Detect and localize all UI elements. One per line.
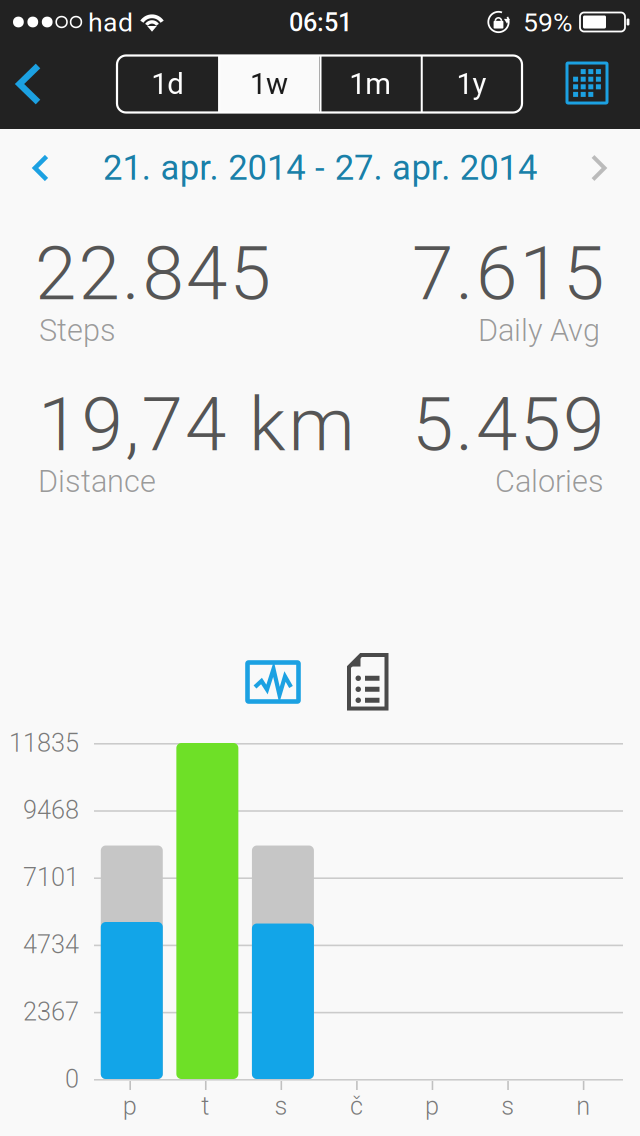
- staticText: Steps: [39, 312, 116, 348]
- staticText: Distance: [38, 463, 156, 499]
- staticText: 4734: [23, 930, 79, 959]
- staticText: 0: [65, 1064, 79, 1094]
- staticText: Calories: [495, 463, 604, 499]
- button[interactable]: 1w: [218, 55, 319, 112]
- staticText: t: [201, 1091, 209, 1121]
- staticText: 5.459: [412, 381, 604, 468]
- staticText: 7101: [23, 863, 79, 892]
- staticText: n: [576, 1091, 590, 1121]
- button[interactable]: 1d: [117, 42, 522, 126]
- button[interactable]: Calendar: [551, 41, 623, 125]
- staticText: 21. apr. 2014 - 27. apr. 2014: [103, 148, 537, 188]
- staticText: p: [123, 1091, 137, 1121]
- staticText: 1d: [151, 67, 184, 101]
- button[interactable]: 1d: [117, 55, 218, 112]
- staticText: č: [350, 1091, 363, 1121]
- button[interactable]: 1y: [421, 55, 522, 112]
- staticText: 1m: [349, 67, 391, 101]
- staticText: s: [274, 1091, 287, 1121]
- button[interactable]: Next week: [561, 137, 637, 199]
- staticText: had: [88, 7, 133, 38]
- staticText: p: [425, 1091, 439, 1121]
- staticText: 1y: [456, 67, 486, 101]
- staticText: 7.615: [412, 230, 604, 317]
- staticText: 06:51: [289, 8, 352, 37]
- staticText: 2367: [23, 997, 79, 1027]
- staticText: 19,74 km: [38, 381, 354, 468]
- staticText: Daily Avg: [478, 312, 600, 348]
- staticText: 22.845: [35, 230, 270, 317]
- button[interactable]: 1m: [319, 55, 421, 112]
- staticText: s: [501, 1091, 514, 1121]
- staticText: 59%: [523, 7, 573, 38]
- staticText: 9468: [23, 795, 79, 825]
- staticText: 11835: [9, 728, 79, 758]
- staticText: 1w: [250, 67, 288, 101]
- button[interactable]: Graph view: [236, 650, 310, 714]
- button[interactable]: Previous week: [3, 137, 79, 199]
- button[interactable]: Back: [0, 45, 58, 129]
- button[interactable]: List view: [331, 650, 405, 714]
